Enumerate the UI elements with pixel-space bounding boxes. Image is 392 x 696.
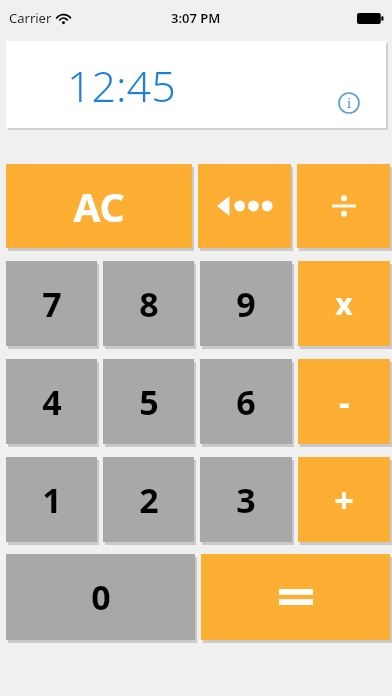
staticText: i <box>347 94 352 112</box>
staticText: 3 <box>236 477 256 523</box>
staticText: 12:45 <box>67 56 176 115</box>
staticText: 4 <box>42 379 62 425</box>
button[interactable]: 6 <box>200 359 292 444</box>
button[interactable]: 2 <box>103 457 194 542</box>
button[interactable]: 7 <box>6 261 97 346</box>
staticText: 5 <box>139 379 159 425</box>
button[interactable]: Divide <box>297 164 390 248</box>
button[interactable]: Equals <box>201 554 390 640</box>
staticText: 9 <box>236 281 256 327</box>
button[interactable]: 5 <box>103 359 194 444</box>
button[interactable]: Info <box>336 90 362 116</box>
staticText: 7 <box>42 281 62 327</box>
staticText: 8 <box>139 281 159 327</box>
button[interactable]: 8 <box>103 261 194 346</box>
button[interactable]: - <box>298 359 390 444</box>
staticText: 3:07 PM <box>171 9 221 27</box>
button[interactable]: 1 <box>6 457 97 542</box>
button[interactable]: 3 <box>200 457 292 542</box>
staticText: Carrier <box>9 9 52 27</box>
staticText: x <box>335 283 353 324</box>
button[interactable]: 4 <box>6 359 97 444</box>
button[interactable]: Backspace <box>198 164 291 248</box>
staticText: 0 <box>91 574 111 620</box>
button[interactable]: + <box>298 457 390 542</box>
button[interactable]: 0 <box>6 554 195 640</box>
staticText: 1 <box>42 477 62 523</box>
staticText: 6 <box>236 379 256 425</box>
button[interactable]: x <box>298 261 390 346</box>
staticText: - <box>339 379 350 425</box>
staticText: AC <box>73 180 125 233</box>
button[interactable]: AC <box>6 164 192 248</box>
button[interactable]: 9 <box>200 261 292 346</box>
staticText: 2 <box>139 477 159 523</box>
staticText: + <box>334 477 354 523</box>
